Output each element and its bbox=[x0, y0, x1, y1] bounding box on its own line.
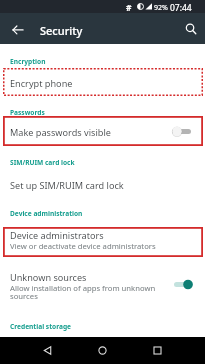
staticText: View or deactivate device administrators bbox=[10, 241, 156, 251]
staticText: Security bbox=[40, 23, 83, 38]
button[interactable]: Toggle off bbox=[172, 126, 191, 137]
staticText: Credential storage bbox=[10, 322, 71, 331]
button[interactable]: Search bbox=[175, 13, 205, 44]
staticText: Make passwords visible bbox=[10, 126, 111, 138]
staticText: 92% bbox=[154, 3, 168, 13]
button[interactable]: Make passwords visible bbox=[0, 116, 205, 146]
staticText: 07:44 bbox=[170, 2, 192, 14]
button[interactable]: Set up SIM/RUIM card lock bbox=[0, 170, 205, 196]
button[interactable]: Device administrators bbox=[0, 227, 205, 257]
staticText: SIM/RUIM card lock bbox=[10, 158, 75, 167]
button[interactable]: Back bbox=[34, 337, 61, 364]
button[interactable]: Unknown sources bbox=[0, 264, 205, 302]
staticText: Passwords bbox=[10, 108, 45, 117]
staticText: Encrypt phone bbox=[10, 77, 73, 89]
staticText: Device administration bbox=[10, 209, 83, 218]
staticText: sources bbox=[10, 291, 38, 301]
staticText: # bbox=[126, 2, 132, 14]
button[interactable]: Encrypt phone bbox=[0, 68, 205, 96]
staticText: Encryption bbox=[10, 57, 46, 66]
button[interactable]: Back bbox=[2, 13, 33, 44]
button[interactable]: Toggle on bbox=[174, 279, 193, 290]
staticText: Allow installation of apps from unknown bbox=[10, 283, 156, 293]
staticText: Unknown sources bbox=[10, 271, 87, 283]
button[interactable]: Recents bbox=[144, 337, 171, 364]
staticText: Set up SIM/RUIM card lock bbox=[10, 179, 124, 191]
staticText: Device administrators bbox=[10, 229, 104, 241]
button[interactable]: Home bbox=[89, 337, 116, 364]
